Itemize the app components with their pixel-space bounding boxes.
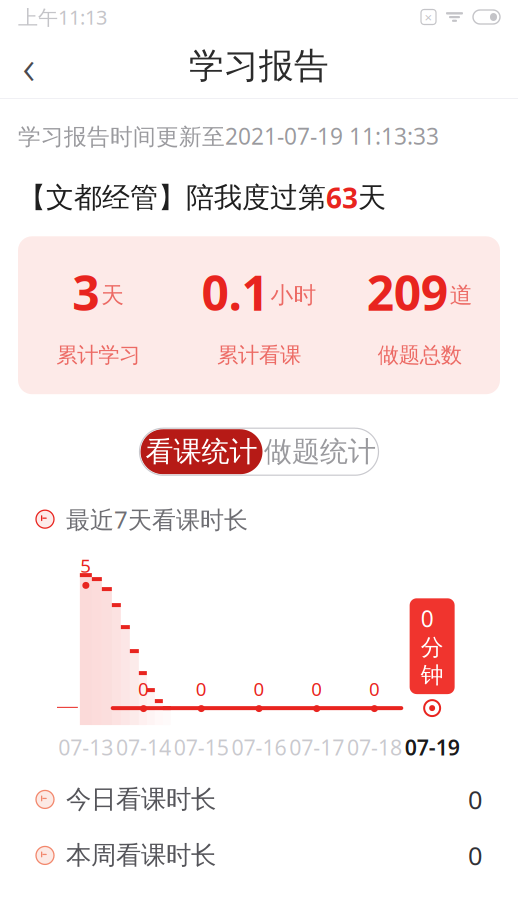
staticText: 0 — [468, 839, 482, 872]
staticText: 5 — [80, 553, 91, 578]
staticText: 63 — [326, 179, 358, 216]
staticText: 3 — [72, 260, 99, 324]
staticText: 天 — [358, 180, 386, 215]
button[interactable]: Back — [0, 38, 58, 94]
staticText: 最近7天看课时长 — [66, 503, 248, 535]
staticText: 学习报告时间更新至2021-07-19 11:13:33 — [18, 121, 439, 151]
staticText: 0 — [369, 676, 380, 701]
button[interactable]: 今日看课时长 — [0, 771, 518, 827]
staticText: 209 — [367, 260, 448, 324]
staticText: × — [424, 8, 432, 26]
staticText: 看课统计 — [145, 434, 257, 469]
staticText: 累计学习 — [56, 342, 140, 368]
button[interactable]: 看课统计 — [140, 429, 262, 474]
staticText: 0 — [468, 783, 482, 816]
staticText: 07-16 — [231, 733, 286, 761]
staticText: 07-14 — [116, 733, 171, 761]
staticText: 0.1 — [201, 260, 268, 324]
button[interactable]: 本周看课时长 — [0, 827, 518, 883]
staticText: 07-15 — [174, 733, 229, 761]
staticText: 【文都经管】陪我度过第 — [18, 180, 326, 215]
staticText: 0分钟 — [421, 603, 444, 689]
staticText: 累计看课 — [217, 342, 301, 368]
staticText: 做题总数 — [378, 342, 462, 368]
staticText: ‹ — [22, 34, 35, 98]
staticText: 07-17 — [289, 733, 344, 761]
staticText: 0 — [138, 676, 149, 701]
staticText: 0 — [253, 676, 264, 701]
staticText: 道 — [450, 281, 473, 309]
staticText: 本周看课时长 — [66, 840, 216, 871]
staticText: 07-18 — [347, 733, 402, 761]
staticText: 学习报告 — [189, 45, 329, 87]
staticText: 0 — [196, 676, 207, 701]
staticText: 今日看课时长 — [66, 784, 216, 815]
staticText: 07-13 — [58, 733, 113, 761]
staticText: 上午11:13 — [18, 4, 107, 30]
staticText: 小时 — [270, 281, 316, 309]
staticText: 做题统计 — [264, 434, 376, 469]
staticText: 0 — [311, 676, 322, 701]
staticText: 07-19 — [405, 733, 460, 761]
button[interactable]: 做题统计 — [262, 429, 377, 474]
staticText: 天 — [101, 281, 124, 309]
